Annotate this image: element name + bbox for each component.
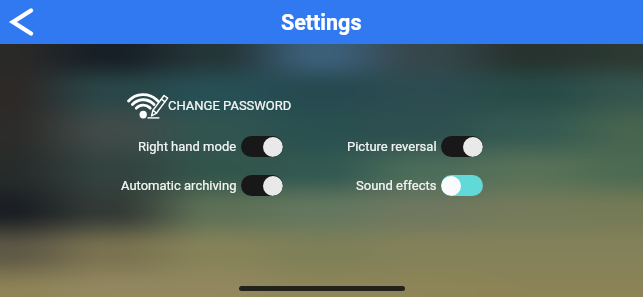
staticText: Settings <box>281 10 362 35</box>
button[interactable]: Toggle <box>441 136 483 157</box>
button[interactable]: Toggle <box>241 175 283 196</box>
button[interactable]: CHANGE PASSWORD <box>126 90 296 122</box>
staticText: CHANGE PASSWORD <box>168 98 292 113</box>
staticText: Sound effects <box>356 178 437 193</box>
staticText: Automatic archiving <box>121 178 237 193</box>
staticText: Right hand mode <box>138 139 237 154</box>
button[interactable]: Back <box>0 0 44 44</box>
button[interactable]: Automatic archiving <box>83 173 283 197</box>
staticText: Picture reversal <box>347 139 437 154</box>
button[interactable]: Picture reversal <box>283 134 483 158</box>
button[interactable]: Toggle <box>241 136 283 157</box>
button[interactable]: Sound effects <box>283 173 483 197</box>
button[interactable]: Right hand mode <box>83 134 283 158</box>
button[interactable]: Toggle <box>441 175 483 196</box>
